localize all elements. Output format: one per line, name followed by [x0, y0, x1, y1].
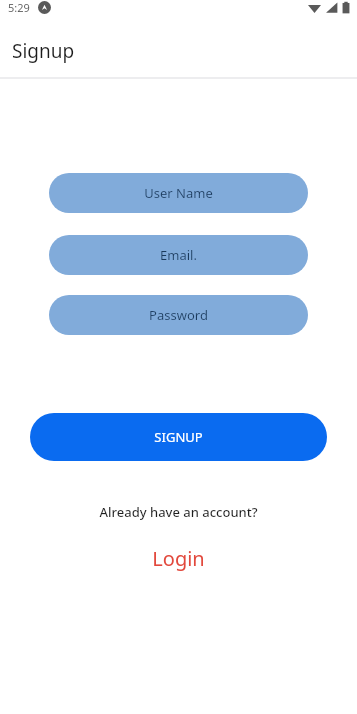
staticText: Login	[152, 545, 205, 572]
button[interactable]: Login	[138, 543, 219, 573]
button[interactable]: Password	[49, 295, 308, 335]
staticText: Already have an account?	[0, 503, 357, 521]
staticText: Email.	[160, 246, 197, 264]
staticText: SIGNUP	[154, 428, 203, 446]
button[interactable]: User Name	[49, 173, 308, 213]
button[interactable]: SIGNUP	[30, 413, 327, 461]
staticText: Password	[149, 306, 208, 324]
button[interactable]: Email.	[49, 235, 308, 275]
staticText: Signup	[12, 38, 75, 64]
staticText: User Name	[144, 184, 213, 202]
staticText: 5:29	[8, 0, 30, 15]
